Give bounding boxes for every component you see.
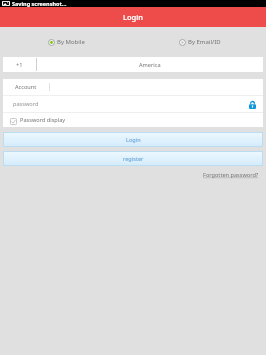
staticText: password: [13, 100, 39, 108]
staticText: Saving screenshot…: [12, 0, 67, 7]
button[interactable]: By Mobile: [0, 38, 133, 46]
staticText: By Mobile: [57, 38, 85, 46]
button[interactable]: Login: [3, 132, 263, 147]
staticText: register: [123, 155, 144, 163]
button[interactable]: register: [3, 151, 263, 166]
staticText: Login: [126, 136, 141, 144]
staticText: America: [139, 61, 161, 69]
staticText: Password display: [20, 116, 66, 124]
staticText: By Email/ID: [188, 38, 221, 46]
staticText: Login: [123, 12, 143, 22]
button[interactable]: Toggle password display: [10, 117, 17, 124]
button[interactable]: By Email/ID: [133, 38, 266, 46]
button[interactable]: Forgotten password?: [203, 171, 266, 179]
other: Password locked: [249, 101, 256, 109]
staticText: Account: [15, 83, 37, 91]
staticText: +1: [16, 61, 23, 69]
